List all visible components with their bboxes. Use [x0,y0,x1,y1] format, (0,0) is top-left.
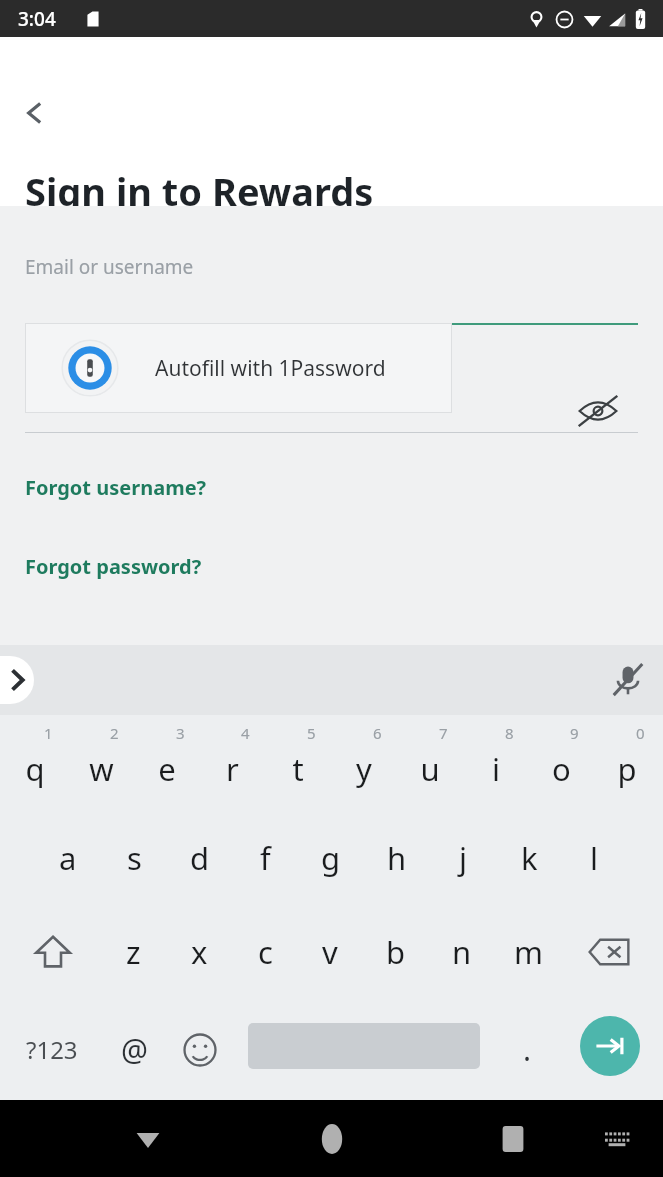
button[interactable]: 5 [266,715,330,811]
staticText: g [321,837,341,879]
staticText: 0 [636,723,645,743]
staticText: d [190,837,210,879]
staticText: 9 [570,723,579,743]
button[interactable]: x [167,905,231,999]
staticText: t [292,748,304,790]
button[interactable]: 8 [464,715,528,811]
button[interactable]: s [102,811,166,905]
button[interactable]: 0 [595,715,659,811]
staticText: c [258,931,273,973]
button[interactable]: ?123 [10,999,94,1100]
button[interactable]: Recent apps [483,1109,543,1169]
button[interactable]: Autofill with 1Password [25,323,452,413]
button[interactable]: Forgot password? [25,553,202,580]
staticText: Sign in to Rewards [25,165,374,217]
staticText: m [514,931,543,973]
button[interactable]: Next [580,1016,640,1076]
button[interactable]: k [497,811,561,905]
staticText: Email or username [25,254,194,280]
staticText: z [126,931,141,973]
staticText: ?123 [26,1033,78,1066]
button[interactable]: n [430,905,494,999]
button[interactable]: Switch keyboard [591,1113,643,1165]
staticText: a [59,837,77,879]
button[interactable]: 9 [529,715,593,811]
button[interactable]: m [496,905,560,999]
button[interactable]: Back [8,89,56,137]
staticText: Forgot username? [25,474,207,501]
button[interactable]: Voice input muted [607,659,649,701]
button[interactable]: . [496,999,558,1100]
staticText: w [89,748,114,790]
staticText: 2 [110,723,119,743]
button[interactable]: b [364,905,428,999]
staticText: . [523,1029,532,1070]
button[interactable]: a [36,811,100,905]
staticText: n [452,931,472,973]
button[interactable]: Expand suggestions [0,656,34,704]
staticText: v [322,931,338,973]
staticText: x [191,931,208,973]
staticText: 7 [439,723,448,743]
staticText: 6 [373,723,382,743]
button[interactable]: Emoji [168,999,232,1100]
staticText: Autofill with 1Password [155,354,386,383]
button[interactable]: 1 [3,715,67,811]
button[interactable]: Shift [20,905,86,999]
staticText: 4 [241,723,250,743]
button[interactable]: Hide keyboard [118,1109,178,1169]
button[interactable]: 2 [69,715,133,811]
staticText: 8 [505,723,514,743]
staticText: 3:04 [18,6,56,32]
button[interactable]: f [233,811,297,905]
staticText: 5 [307,723,316,743]
staticText: h [387,837,407,879]
button[interactable]: 3 [135,715,199,811]
button[interactable]: Forgot username? [25,474,207,501]
staticText: f [260,837,271,879]
staticText: i [492,748,500,790]
button[interactable]: c [233,905,297,999]
staticText: Forgot password? [25,553,202,580]
button[interactable]: l [562,811,626,905]
button[interactable]: z [101,905,165,999]
button[interactable]: d [168,811,232,905]
staticText: 1 [44,723,53,743]
staticText: s [127,837,142,879]
staticText: q [25,748,45,790]
button[interactable]: 6 [332,715,396,811]
staticText: 3 [176,723,185,743]
staticText: u [420,748,440,790]
staticText: y [356,748,372,790]
button[interactable]: @ [100,999,168,1100]
button[interactable]: v [298,905,362,999]
staticText: o [552,748,571,790]
staticText: @ [121,1029,148,1070]
staticText: r [226,748,239,790]
staticText: k [521,837,538,879]
button[interactable]: h [365,811,429,905]
button[interactable]: Home [302,1109,362,1169]
staticText: p [617,748,637,790]
button[interactable]: 7 [398,715,462,811]
staticText: b [386,931,406,973]
staticText: e [158,748,176,790]
staticText: j [459,837,467,879]
staticText: l [590,837,598,879]
button[interactable]: j [431,811,495,905]
button[interactable]: Show password [575,388,621,434]
button[interactable]: Backspace [576,905,642,999]
button[interactable]: g [299,811,363,905]
button[interactable]: 4 [200,715,264,811]
